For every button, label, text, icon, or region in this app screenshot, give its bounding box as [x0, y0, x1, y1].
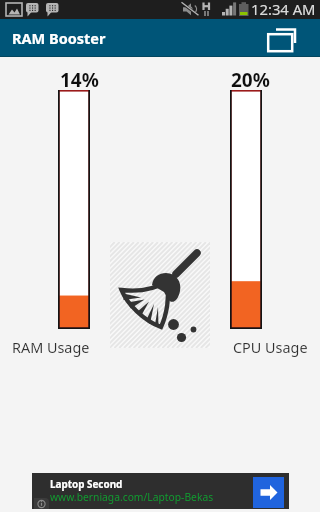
- staticText: Laptop Second: [50, 477, 123, 490]
- button[interactable]: Multi window: [262, 19, 300, 57]
- staticText: RAM Usage: [12, 338, 90, 358]
- button[interactable]: Clean memory: [110, 242, 210, 348]
- staticText: 12:34 AM: [251, 0, 316, 18]
- staticText: RAM Booster: [12, 28, 106, 48]
- button[interactable]: Open ad: [253, 477, 284, 508]
- staticText: www.berniaga.com/Laptop-Bekas: [50, 490, 214, 504]
- staticText: 20%: [231, 67, 270, 93]
- button[interactable]: Ad info: [34, 498, 49, 509]
- button[interactable]: Laptop Second: [32, 473, 289, 509]
- staticText: 14%: [60, 67, 99, 93]
- staticText: CPU Usage: [233, 338, 308, 358]
